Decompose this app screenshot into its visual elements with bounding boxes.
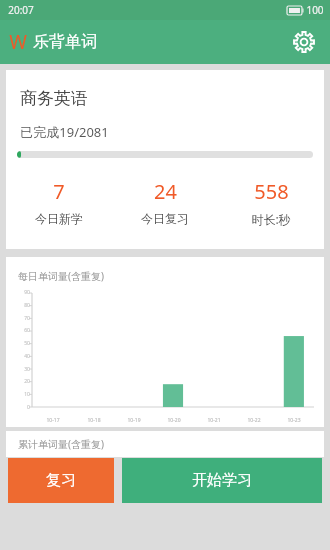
staticText: 558 [254,178,289,205]
staticText: 10 [24,391,30,398]
staticText: 10-23 [287,417,301,424]
button[interactable]: 558 [218,178,324,227]
staticText: 24 [154,178,177,205]
staticText: 10-17 [46,417,60,424]
staticText: 90 [24,289,30,296]
staticText: 10-20 [167,417,181,424]
staticText: 累计单词量(含重复) [18,437,104,451]
staticText: 7 [53,178,65,205]
staticText: 乐背单词 [33,32,97,52]
staticText: 10-21 [207,417,221,424]
staticText: 10-18 [87,417,101,424]
button[interactable]: Settings [284,22,324,62]
staticText: 70 [24,315,30,322]
staticText: 50 [24,340,30,347]
staticText: 40 [24,353,30,360]
staticText: 10-19 [127,417,141,424]
button[interactable]: 复习 [8,458,114,503]
staticText: 今日复习 [141,211,189,226]
button[interactable]: 24 [112,178,218,226]
staticText: 30 [24,366,30,373]
button[interactable]: 7 [6,178,112,226]
staticText: 今日新学 [35,211,83,226]
staticText: 时长:秒 [251,211,291,227]
staticText: 商务英语 [20,88,88,109]
staticText: 每日单词量(含重复) [18,269,104,283]
staticText: 60 [24,327,30,334]
staticText: 10-22 [247,417,261,424]
staticText: 80 [24,302,30,309]
button[interactable]: 开始学习 [122,458,322,503]
staticText: 20:07 [8,3,34,17]
staticText: W [9,29,27,55]
staticText: 100 [306,3,324,17]
staticText: 0 [27,404,30,411]
staticText: 20 [24,378,30,385]
staticText: 复习 [46,471,76,490]
staticText: 开始学习 [192,471,252,490]
staticText: 已完成19/2081 [20,123,109,141]
